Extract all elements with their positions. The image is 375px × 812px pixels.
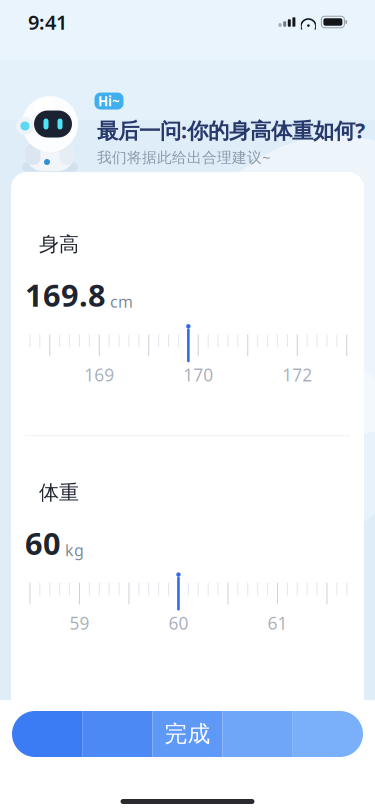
staticText: 9:41 (28, 9, 67, 35)
staticText: 60 (25, 523, 61, 564)
staticText: 170 (183, 363, 213, 386)
staticText: 我们将据此给出合理建议~ (97, 147, 270, 167)
staticText: 体重 (39, 480, 79, 505)
staticText: 身高 (39, 232, 79, 257)
button[interactable]: 完成 (0, 711, 375, 757)
staticText: 169 (84, 363, 114, 386)
staticText: 完成 (164, 720, 210, 748)
staticText: 最后一问:你的身高体重如何? (97, 116, 365, 144)
staticText: kg (65, 539, 84, 560)
staticText: 60 (168, 612, 188, 635)
staticText: Hi~ (98, 92, 120, 110)
staticText: 61 (267, 612, 287, 635)
staticText: cm (110, 291, 133, 312)
staticText: 59 (69, 612, 89, 635)
staticText: 169.8 (25, 275, 106, 315)
staticText: 172 (282, 363, 312, 386)
